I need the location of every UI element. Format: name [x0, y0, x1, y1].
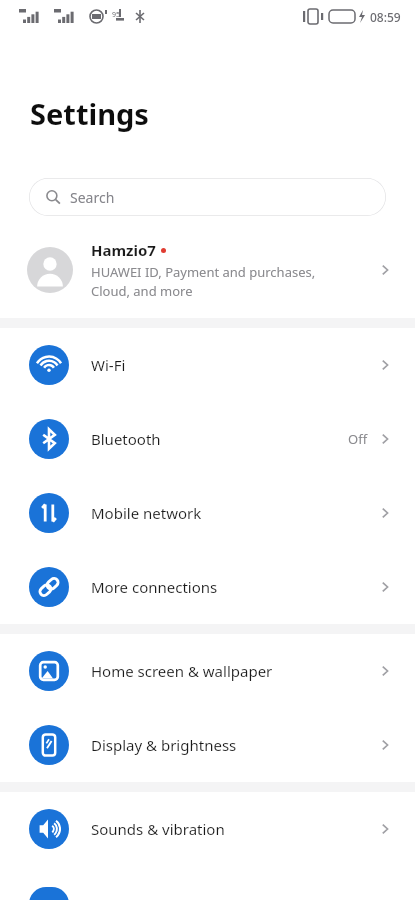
- other: Open: [377, 262, 393, 278]
- staticText: More connections: [91, 577, 377, 597]
- other: Open: [377, 357, 393, 373]
- button[interactable]: Display & brightness: [0, 708, 415, 782]
- staticText: Search: [70, 188, 115, 207]
- staticText: 95: [112, 10, 121, 20]
- staticText: Off: [348, 430, 368, 448]
- staticText: Settings: [30, 94, 149, 133]
- button[interactable]: Hamzio7: [0, 236, 415, 304]
- button[interactable]: Home screen & wallpaper: [0, 634, 415, 708]
- staticText: Wi-Fi: [91, 355, 377, 375]
- button[interactable]: Mobile network: [0, 476, 415, 550]
- button[interactable]: Sounds & vibration: [0, 792, 415, 866]
- staticText: Hamzio7: [91, 240, 156, 260]
- other: Open: [377, 505, 393, 521]
- staticText: HUAWEI ID, Payment and purchases, Cloud,…: [91, 263, 316, 300]
- staticText: Home screen & wallpaper: [91, 661, 377, 681]
- staticText: 08:59: [370, 9, 401, 25]
- other: Open: [377, 663, 393, 679]
- button[interactable]: Bluetooth: [0, 402, 415, 476]
- staticText: Bluetooth: [91, 429, 348, 449]
- staticText: Sounds & vibration: [91, 819, 377, 839]
- other: Open: [377, 431, 393, 447]
- other: Open: [377, 737, 393, 753]
- button[interactable]: Wi-Fi: [0, 328, 415, 402]
- button[interactable]: Search: [29, 178, 386, 216]
- staticText: Mobile network: [91, 503, 377, 523]
- other: Open: [377, 579, 393, 595]
- staticText: Display & brightness: [91, 735, 377, 755]
- other: Open: [377, 821, 393, 837]
- button[interactable]: More connections: [0, 550, 415, 624]
